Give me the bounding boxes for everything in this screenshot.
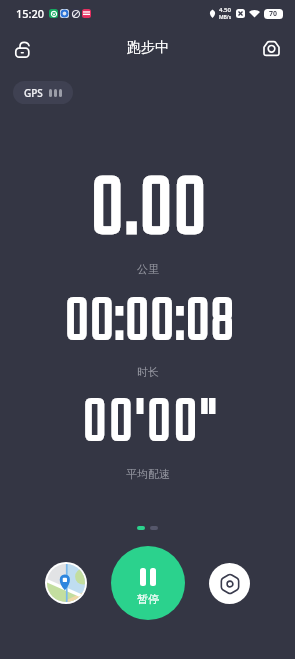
staticText: MB/s (219, 14, 232, 21)
staticText: 70 (269, 9, 278, 19)
staticText: 00'00" (83, 378, 220, 471)
button[interactable]: Camera (254, 31, 288, 65)
staticText: 公里 (137, 262, 159, 276)
staticText: 暂停 (137, 592, 159, 606)
staticText: 00:00:08 (65, 276, 236, 371)
staticText: GPS (24, 86, 43, 100)
button[interactable]: Unlock screen (7, 31, 41, 65)
button[interactable]: Map (45, 562, 87, 604)
button[interactable]: GPS (13, 81, 73, 104)
button[interactable]: 暂停 (111, 546, 185, 620)
staticText: 4.50 (219, 6, 231, 14)
staticText: 跑步中 (127, 39, 169, 57)
button[interactable]: Settings (209, 563, 250, 604)
staticText: 15:20 (16, 6, 45, 21)
staticText: 平均配速 (126, 467, 170, 481)
staticText: 0.00 (91, 147, 209, 276)
staticText: 时长 (137, 365, 159, 379)
